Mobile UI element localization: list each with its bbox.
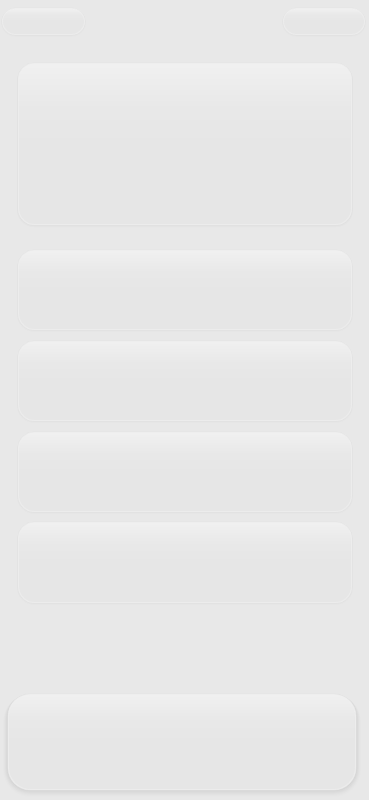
button[interactable]: Bottom navigation <box>8 694 356 790</box>
